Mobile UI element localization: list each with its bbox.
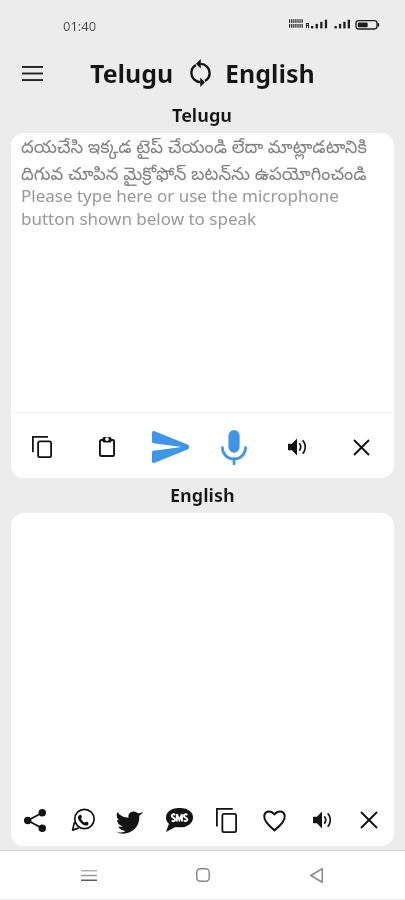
button[interactable]: Telugu	[90, 56, 174, 90]
button[interactable]: Favourite	[254, 800, 294, 840]
button[interactable]: Back	[292, 851, 340, 899]
button[interactable]: Clear text	[341, 427, 381, 467]
button[interactable]: Translate	[150, 427, 190, 467]
staticText: Please type here or use the microphone b…	[21, 184, 383, 230]
button[interactable]: Microphone	[214, 427, 254, 467]
button[interactable]: Recent apps	[65, 851, 113, 899]
button[interactable]: Share	[15, 800, 55, 840]
staticText: English	[170, 483, 235, 508]
button[interactable]: Copy	[206, 800, 246, 840]
staticText: Telugu	[172, 103, 233, 128]
button[interactable]: Menu	[12, 53, 52, 93]
button[interactable]: Clear text	[349, 800, 389, 840]
staticText: 01:40	[63, 17, 97, 35]
button[interactable]: Swap languages	[187, 55, 213, 91]
button[interactable]: Share on WhatsApp	[63, 800, 103, 840]
button[interactable]: Speak aloud	[302, 800, 342, 840]
button[interactable]: English	[225, 56, 315, 90]
button[interactable]: Send SMS	[159, 800, 199, 840]
button[interactable]: Home	[179, 851, 227, 899]
button[interactable]: Paste	[87, 427, 127, 467]
button[interactable]: Speak aloud	[277, 427, 317, 467]
button[interactable]: Share on Twitter	[110, 800, 150, 840]
button[interactable]: Copy	[22, 427, 62, 467]
staticText: దయచేసి ఇక్కడ టైప్ చేయండి లేదా మాట్లాడటాన…	[21, 134, 383, 189]
